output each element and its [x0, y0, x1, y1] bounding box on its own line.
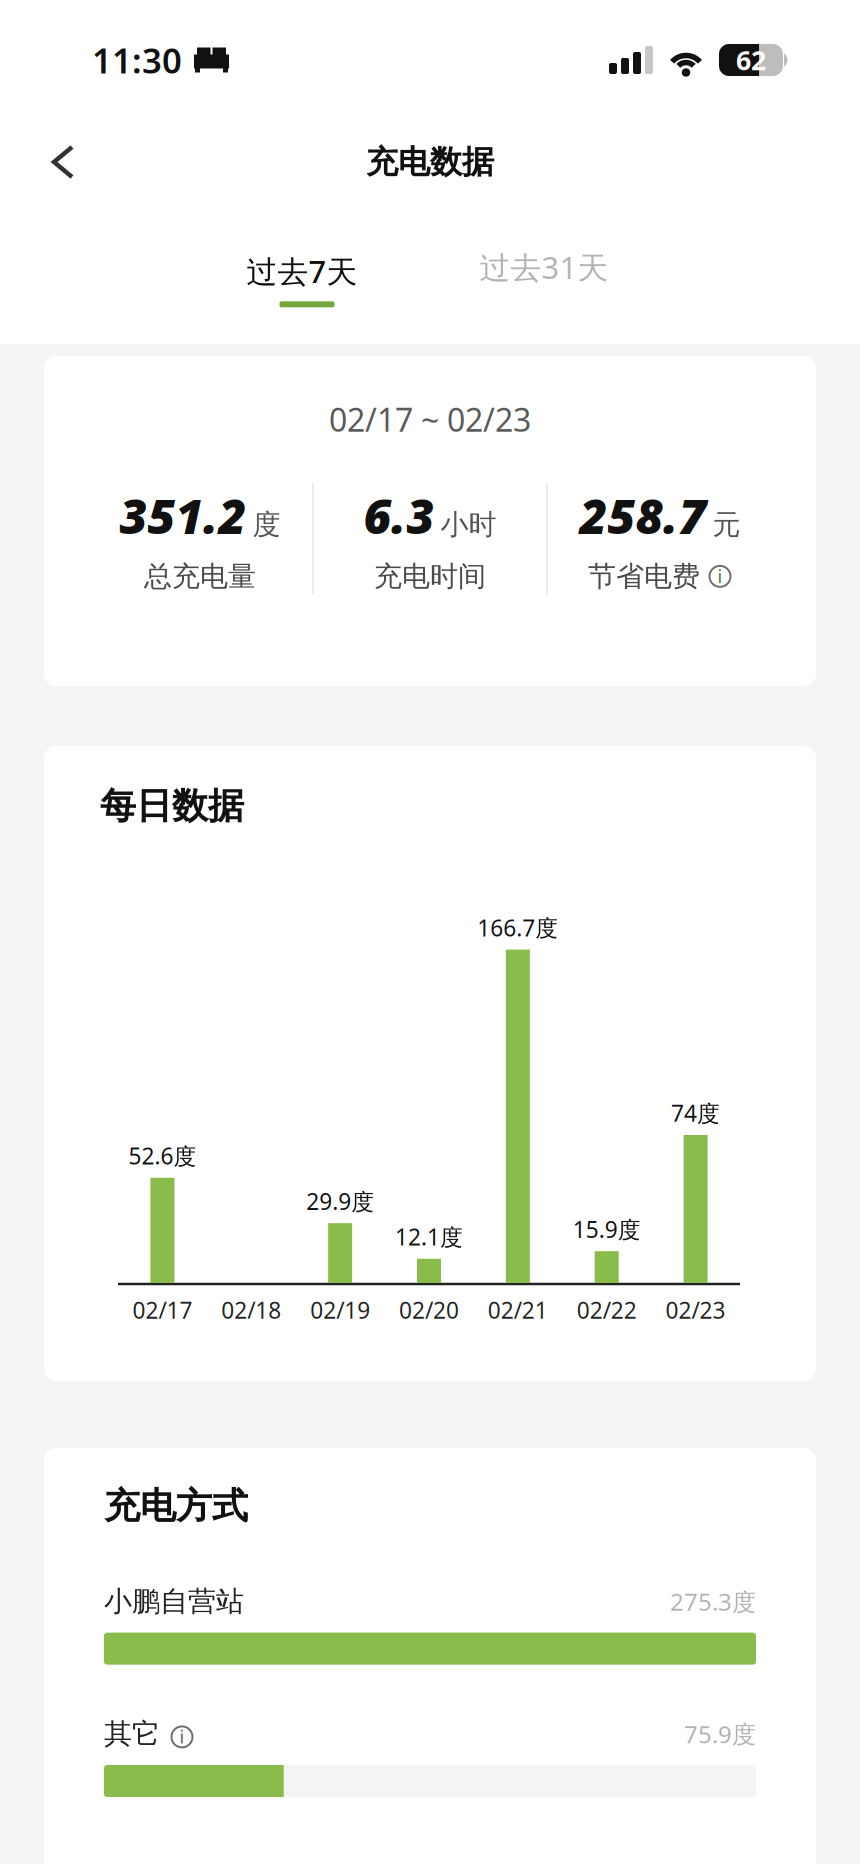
staticText: 节省电费: [588, 559, 700, 594]
staticText: 充电时间: [374, 559, 486, 594]
staticText: 02/22: [577, 1295, 637, 1325]
staticText: 过去31天: [479, 247, 608, 287]
staticText: 充电数据: [366, 142, 494, 182]
button[interactable]: 过去31天: [423, 237, 665, 297]
staticText: 小鹏自营站: [104, 1584, 244, 1619]
staticText: 总充电量: [144, 559, 256, 594]
staticText: 74度: [671, 1098, 720, 1128]
staticText: 每日数据: [100, 784, 244, 828]
staticText: 351.2: [119, 483, 246, 547]
staticText: 02/19: [310, 1295, 370, 1325]
staticText: 02/20: [399, 1295, 459, 1325]
staticText: 166.7度: [477, 912, 558, 943]
staticText: 258.7: [579, 483, 706, 547]
staticText: 过去7天: [246, 251, 357, 291]
staticText: 11:30: [92, 37, 182, 83]
staticText: 度: [252, 507, 280, 542]
staticText: 29.9度: [306, 1186, 374, 1216]
staticText: 其它: [104, 1717, 160, 1751]
staticText: 02/17 ~ 02/23: [329, 398, 531, 440]
button[interactable]: Info: [170, 1725, 194, 1749]
staticText: 小时: [440, 507, 496, 542]
staticText: 12.1度: [395, 1222, 463, 1252]
staticText: 75.9度: [684, 1718, 756, 1750]
staticText: 52.6度: [128, 1141, 196, 1171]
button[interactable]: Info: [708, 564, 732, 588]
staticText: 62: [736, 42, 766, 78]
staticText: 02/23: [666, 1295, 726, 1325]
staticText: i: [179, 1725, 184, 1748]
staticText: i: [717, 565, 722, 588]
staticText: 元: [712, 507, 740, 542]
button[interactable]: 过去7天: [181, 251, 423, 307]
staticText: 02/21: [488, 1295, 548, 1325]
staticText: 275.3度: [670, 1585, 756, 1617]
button[interactable]: Back: [0, 123, 76, 201]
staticText: 6.3: [363, 483, 434, 547]
staticText: 02/18: [221, 1295, 281, 1325]
staticText: 充电方式: [104, 1484, 248, 1528]
staticText: 02/17: [132, 1295, 192, 1325]
staticText: 15.9度: [573, 1214, 641, 1244]
